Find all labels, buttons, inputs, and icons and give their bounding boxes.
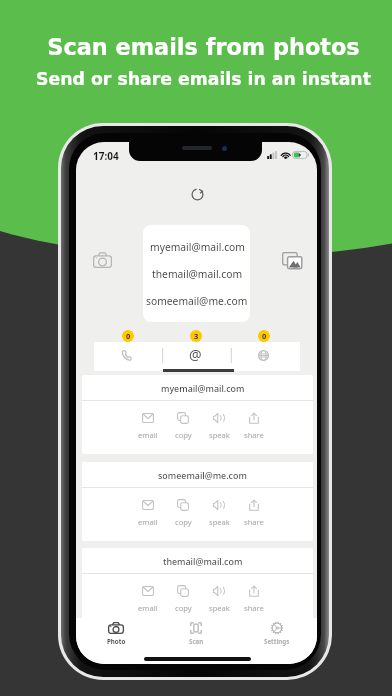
staticText: 17:04 <box>93 149 119 163</box>
button[interactable]: speak <box>204 412 234 440</box>
button[interactable]: themail@mail.com <box>82 548 313 627</box>
button[interactable]: email <box>133 412 163 440</box>
button[interactable]: share <box>239 585 269 613</box>
button[interactable]: share <box>239 499 269 527</box>
button[interactable]: someemail@me.com <box>82 462 313 541</box>
staticText: copy <box>175 430 192 440</box>
staticText: 3 <box>194 331 199 341</box>
button[interactable]: Phone numbers tab <box>94 342 162 371</box>
staticText: share <box>244 430 264 440</box>
staticText: Scan emails from photos <box>47 34 360 60</box>
staticText: someemail@me.com <box>158 469 247 481</box>
staticText: Photo <box>107 637 126 645</box>
button[interactable]: speak <box>204 499 234 527</box>
button[interactable]: email <box>133 585 163 613</box>
staticText: Send or share emails in an instant <box>36 69 371 89</box>
button[interactable]: speak <box>204 585 234 613</box>
staticText: themail@mail.com <box>152 267 243 281</box>
staticText: 0 <box>262 331 267 341</box>
staticText: email <box>138 517 158 527</box>
staticText: Scan <box>189 637 204 645</box>
button[interactable]: myemail@mail.com <box>143 225 250 322</box>
staticText: speak <box>209 517 230 527</box>
button[interactable]: Emails tab <box>162 342 231 371</box>
staticText: email <box>138 430 158 440</box>
button[interactable]: Photo <box>91 622 141 645</box>
button[interactable]: email <box>133 499 163 527</box>
button[interactable]: Websites tab <box>231 342 300 371</box>
staticText: themail@mail.com <box>163 555 243 567</box>
staticText: speak <box>209 603 230 613</box>
staticText: myemail@mail.com <box>161 382 245 394</box>
button[interactable]: Pick from gallery <box>282 252 302 269</box>
staticText: someemail@me.com <box>146 294 248 308</box>
button[interactable]: copy <box>168 412 198 440</box>
staticText: email <box>138 603 158 613</box>
button[interactable]: Settings <box>252 622 302 645</box>
staticText: myemail@mail.com <box>150 240 245 254</box>
staticText: copy <box>175 517 192 527</box>
staticText: 0 <box>126 331 131 341</box>
other: Loading <box>190 187 205 202</box>
staticText: copy <box>175 603 192 613</box>
button[interactable]: copy <box>168 585 198 613</box>
button[interactable]: Scan <box>171 622 221 645</box>
staticText: @ <box>189 345 202 364</box>
staticText: Settings <box>264 637 290 645</box>
staticText: share <box>244 517 264 527</box>
button[interactable]: share <box>239 412 269 440</box>
staticText: share <box>244 603 264 613</box>
button[interactable]: myemail@mail.com <box>82 375 313 454</box>
button[interactable]: copy <box>168 499 198 527</box>
staticText: speak <box>209 430 230 440</box>
button[interactable]: Take photo <box>93 252 112 268</box>
